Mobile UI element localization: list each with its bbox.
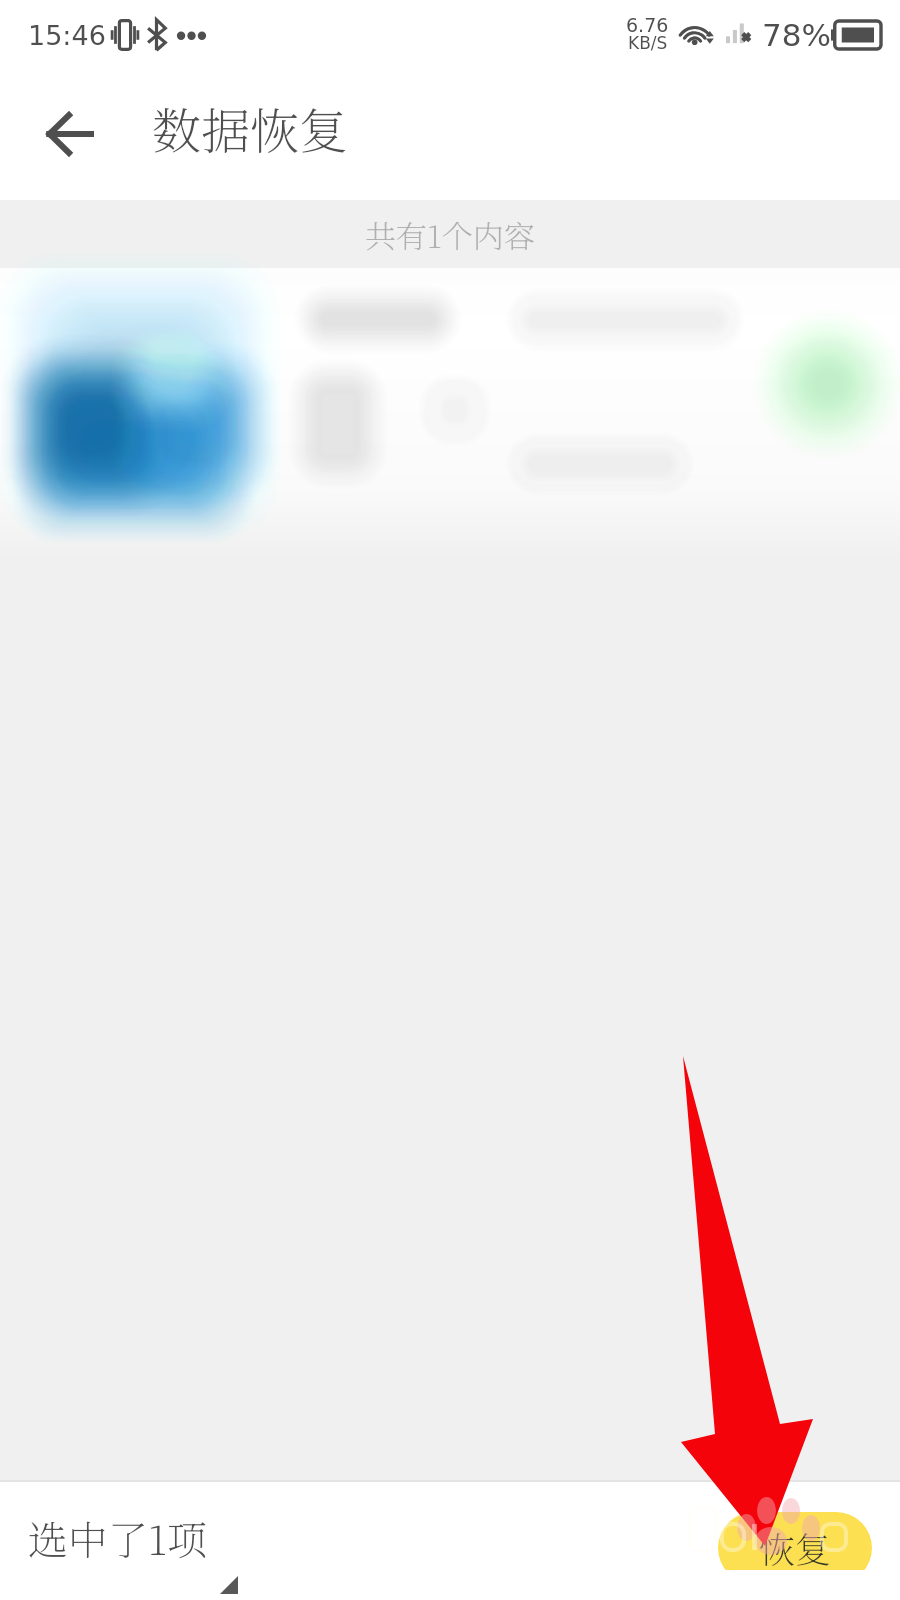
staticText: 78% [762, 17, 831, 53]
staticText: 数据恢复 [152, 93, 349, 163]
button[interactable] [0, 268, 900, 560]
button[interactable]: Back [220, 1576, 238, 1594]
staticText: 共有1个内容 [365, 212, 535, 257]
staticText: KB/S [628, 33, 668, 53]
button[interactable]: Back [21, 86, 117, 182]
staticText: 恢复 [759, 1522, 832, 1574]
button[interactable]: 恢复 [718, 1512, 872, 1584]
staticText: 6.76 [626, 14, 669, 36]
staticText: 选中了1项 [28, 1509, 207, 1566]
staticText: 15:46 [28, 20, 106, 51]
